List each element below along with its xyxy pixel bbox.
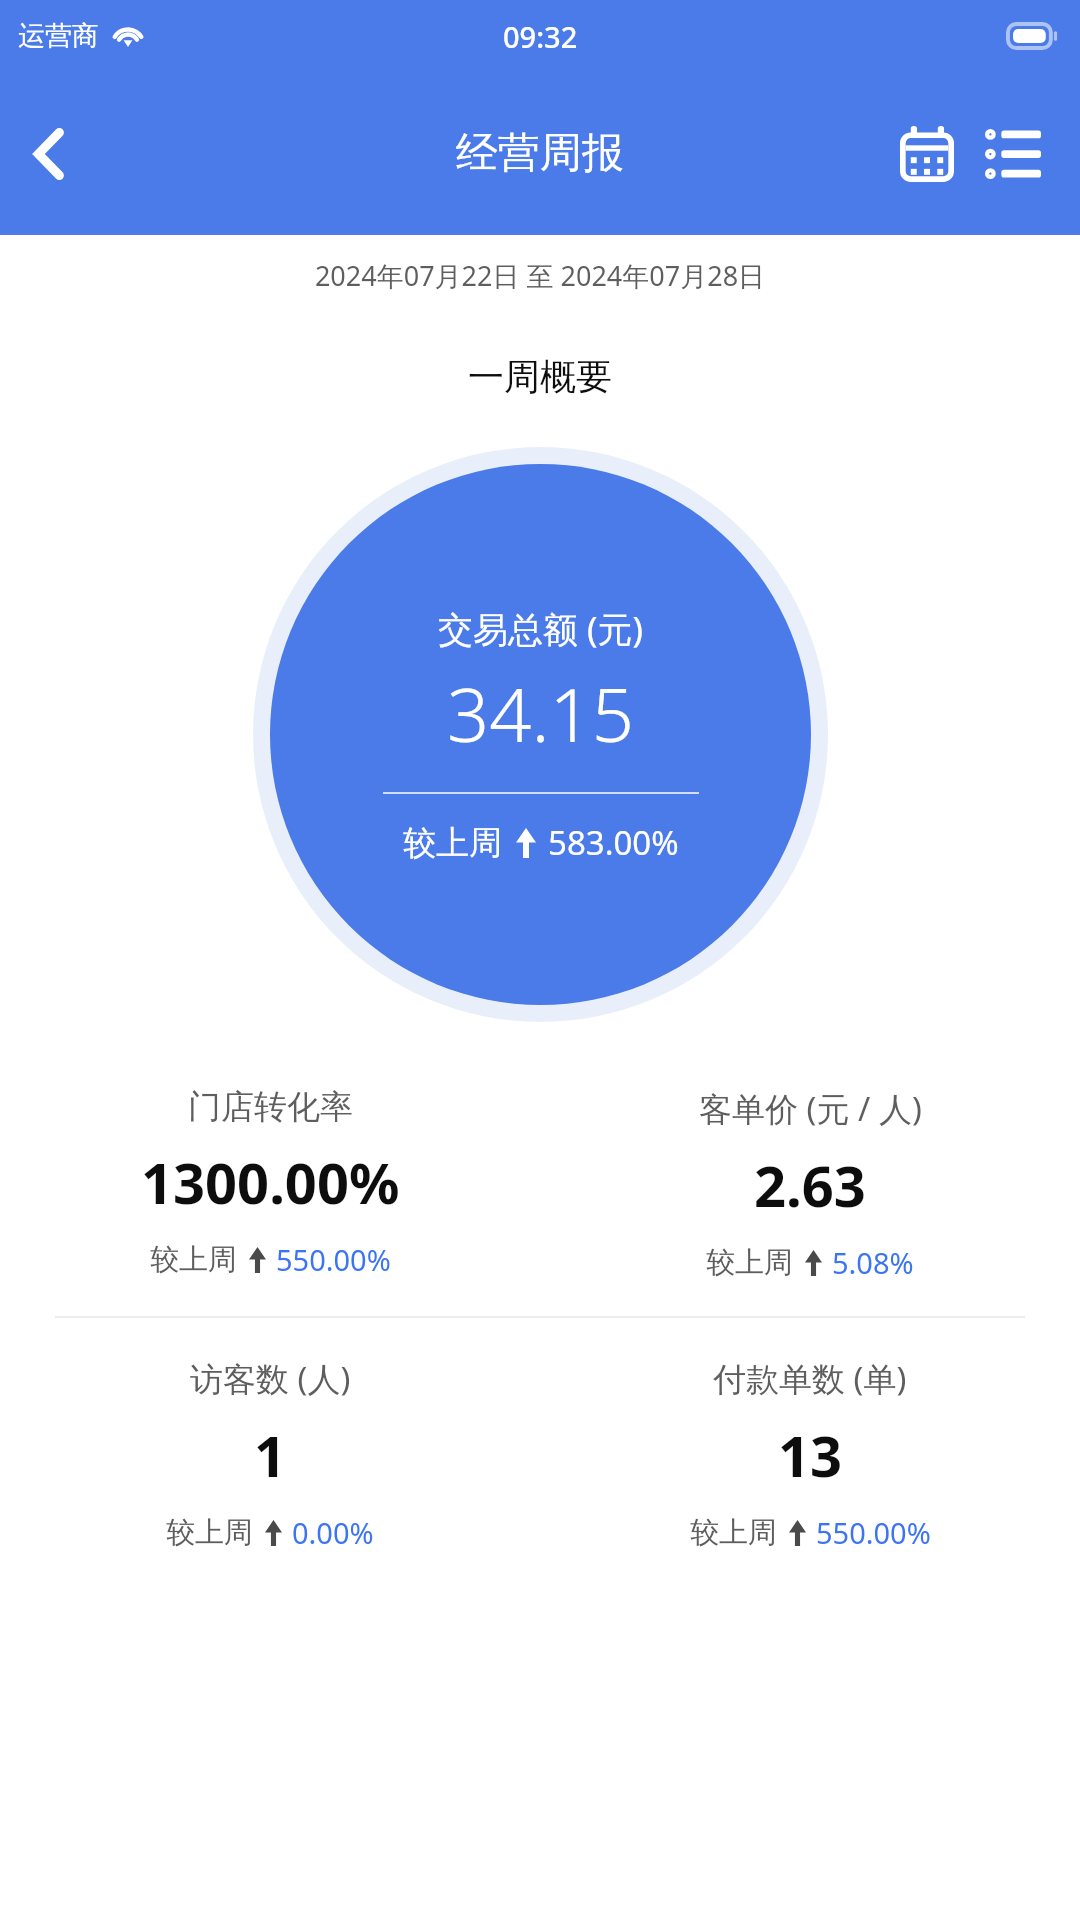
staticText: 较上周 [690,1514,777,1551]
staticText: 经营周报 [456,127,624,180]
staticText: 较上周 [706,1244,793,1281]
staticText: 13 [778,1417,843,1493]
button[interactable]: Calendar [884,111,970,197]
button[interactable]: 客单价 (元 / 人) [540,1086,1080,1282]
staticText: 2.63 [754,1147,866,1223]
staticText: 34.15 [447,663,635,764]
staticText: 583.00% [548,820,679,865]
staticText: 一周概要 [0,354,1080,399]
button[interactable]: List [970,111,1056,197]
button[interactable]: 交易总额 (元) [270,464,811,1005]
staticText: 运营商 [18,19,99,53]
staticText: 550.00% [276,1240,391,1279]
staticText: 客单价 (元 / 人) [699,1086,922,1131]
staticText: 门店转化率 [188,1086,353,1128]
staticText: 1 [254,1417,287,1493]
staticText: 较上周 [403,822,502,864]
staticText: 09:32 [503,17,578,56]
button[interactable]: Back [0,99,96,209]
staticText: 访客数 (人) [190,1356,351,1401]
staticText: 550.00% [816,1513,931,1552]
button[interactable]: 付款单数 (单) [540,1356,1080,1552]
staticText: 付款单数 (单) [713,1356,907,1401]
staticText: 2024年07月22日 至 2024年07月28日 [0,257,1080,294]
button[interactable]: 访客数 (人) [0,1356,540,1552]
button[interactable]: 门店转化率 [0,1086,540,1279]
staticText: 0.00% [292,1513,374,1552]
staticText: 1300.00% [141,1144,400,1220]
staticText: 较上周 [150,1241,237,1278]
staticText: 较上周 [166,1514,253,1551]
staticText: 5.08% [832,1243,914,1282]
staticText: 交易总额 (元) [438,605,644,653]
